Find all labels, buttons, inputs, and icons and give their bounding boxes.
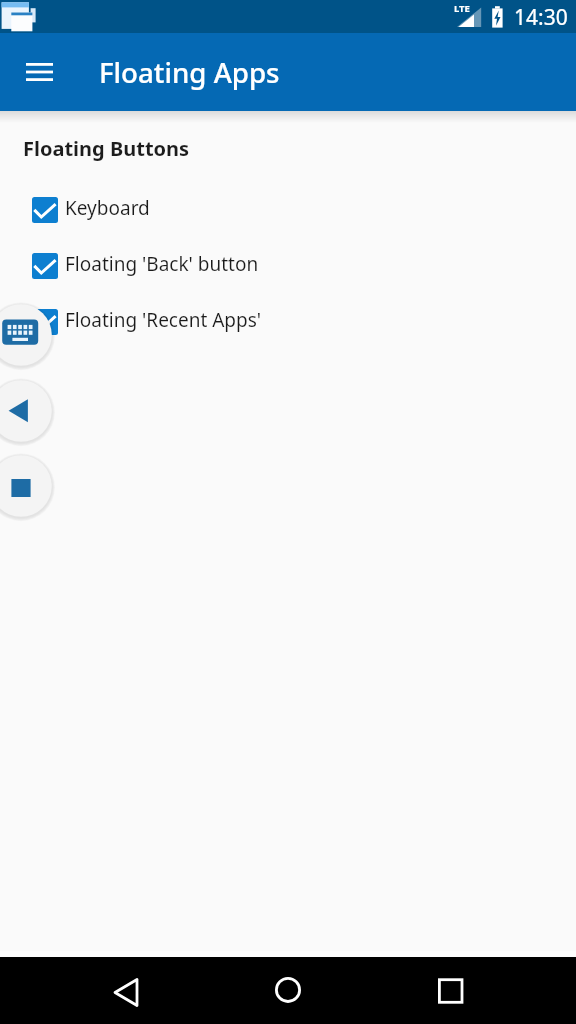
- staticText: Floating 'Recent Apps': [65, 307, 262, 333]
- staticText: Floating 'Back' button: [65, 251, 259, 277]
- staticText: Floating Buttons: [23, 135, 190, 162]
- button[interactable]: Recent apps: [422, 962, 478, 1018]
- staticText: 14:30: [514, 3, 568, 32]
- button[interactable]: Floating recent apps: [0, 452, 55, 520]
- button[interactable]: Keyboard: [0, 197, 576, 223]
- staticText: Keyboard: [65, 195, 150, 221]
- button[interactable]: Home: [260, 962, 316, 1018]
- button[interactable]: Floating 'Recent Apps': [0, 309, 576, 335]
- button[interactable]: Floating keyboard: [0, 301, 55, 369]
- staticText: LTE: [454, 2, 470, 15]
- button[interactable]: Floating back button: [0, 377, 55, 445]
- staticText: Floating Apps: [99, 53, 280, 91]
- button[interactable]: Open navigation drawer: [8, 41, 70, 103]
- button[interactable]: Back: [99, 962, 155, 1018]
- button[interactable]: Floating 'Back' button: [0, 253, 576, 279]
